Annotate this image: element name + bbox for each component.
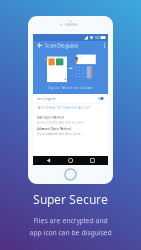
button[interactable]: Tap to change the disguised app icon: [33, 104, 108, 111]
button[interactable]: More options: [101, 41, 108, 50]
button[interactable]: Back: [33, 41, 45, 50]
staticText: app icon can be disguised: [29, 228, 111, 237]
staticText: Files are encrypted and: [33, 216, 107, 225]
staticText: Advanced Open Method: [37, 127, 71, 131]
staticText: Basic Open Method: [37, 116, 64, 119]
button[interactable]: Basic Open Method: [33, 113, 108, 124]
staticText: Disguise 'SafeLock' as a 'Calculator': [47, 86, 93, 90]
staticText: Icon Disguise: [37, 97, 56, 100]
staticText: 50: [95, 35, 99, 40]
button[interactable]: Back: [43, 154, 55, 167]
button[interactable]: Recents: [86, 155, 98, 166]
staticText: Input password and then press ...: [37, 132, 84, 136]
button[interactable]: Advanced Open Method: [33, 125, 108, 136]
staticText: Long press the app icon to open: [37, 121, 84, 124]
staticText: Icon Disguise: [45, 42, 78, 49]
button[interactable]: Home: [64, 154, 77, 167]
staticText: Tap to change the disguised app icon: [37, 106, 90, 109]
staticText: Super Secure: [33, 191, 108, 207]
button[interactable]: Icon Disguise: [33, 94, 108, 103]
